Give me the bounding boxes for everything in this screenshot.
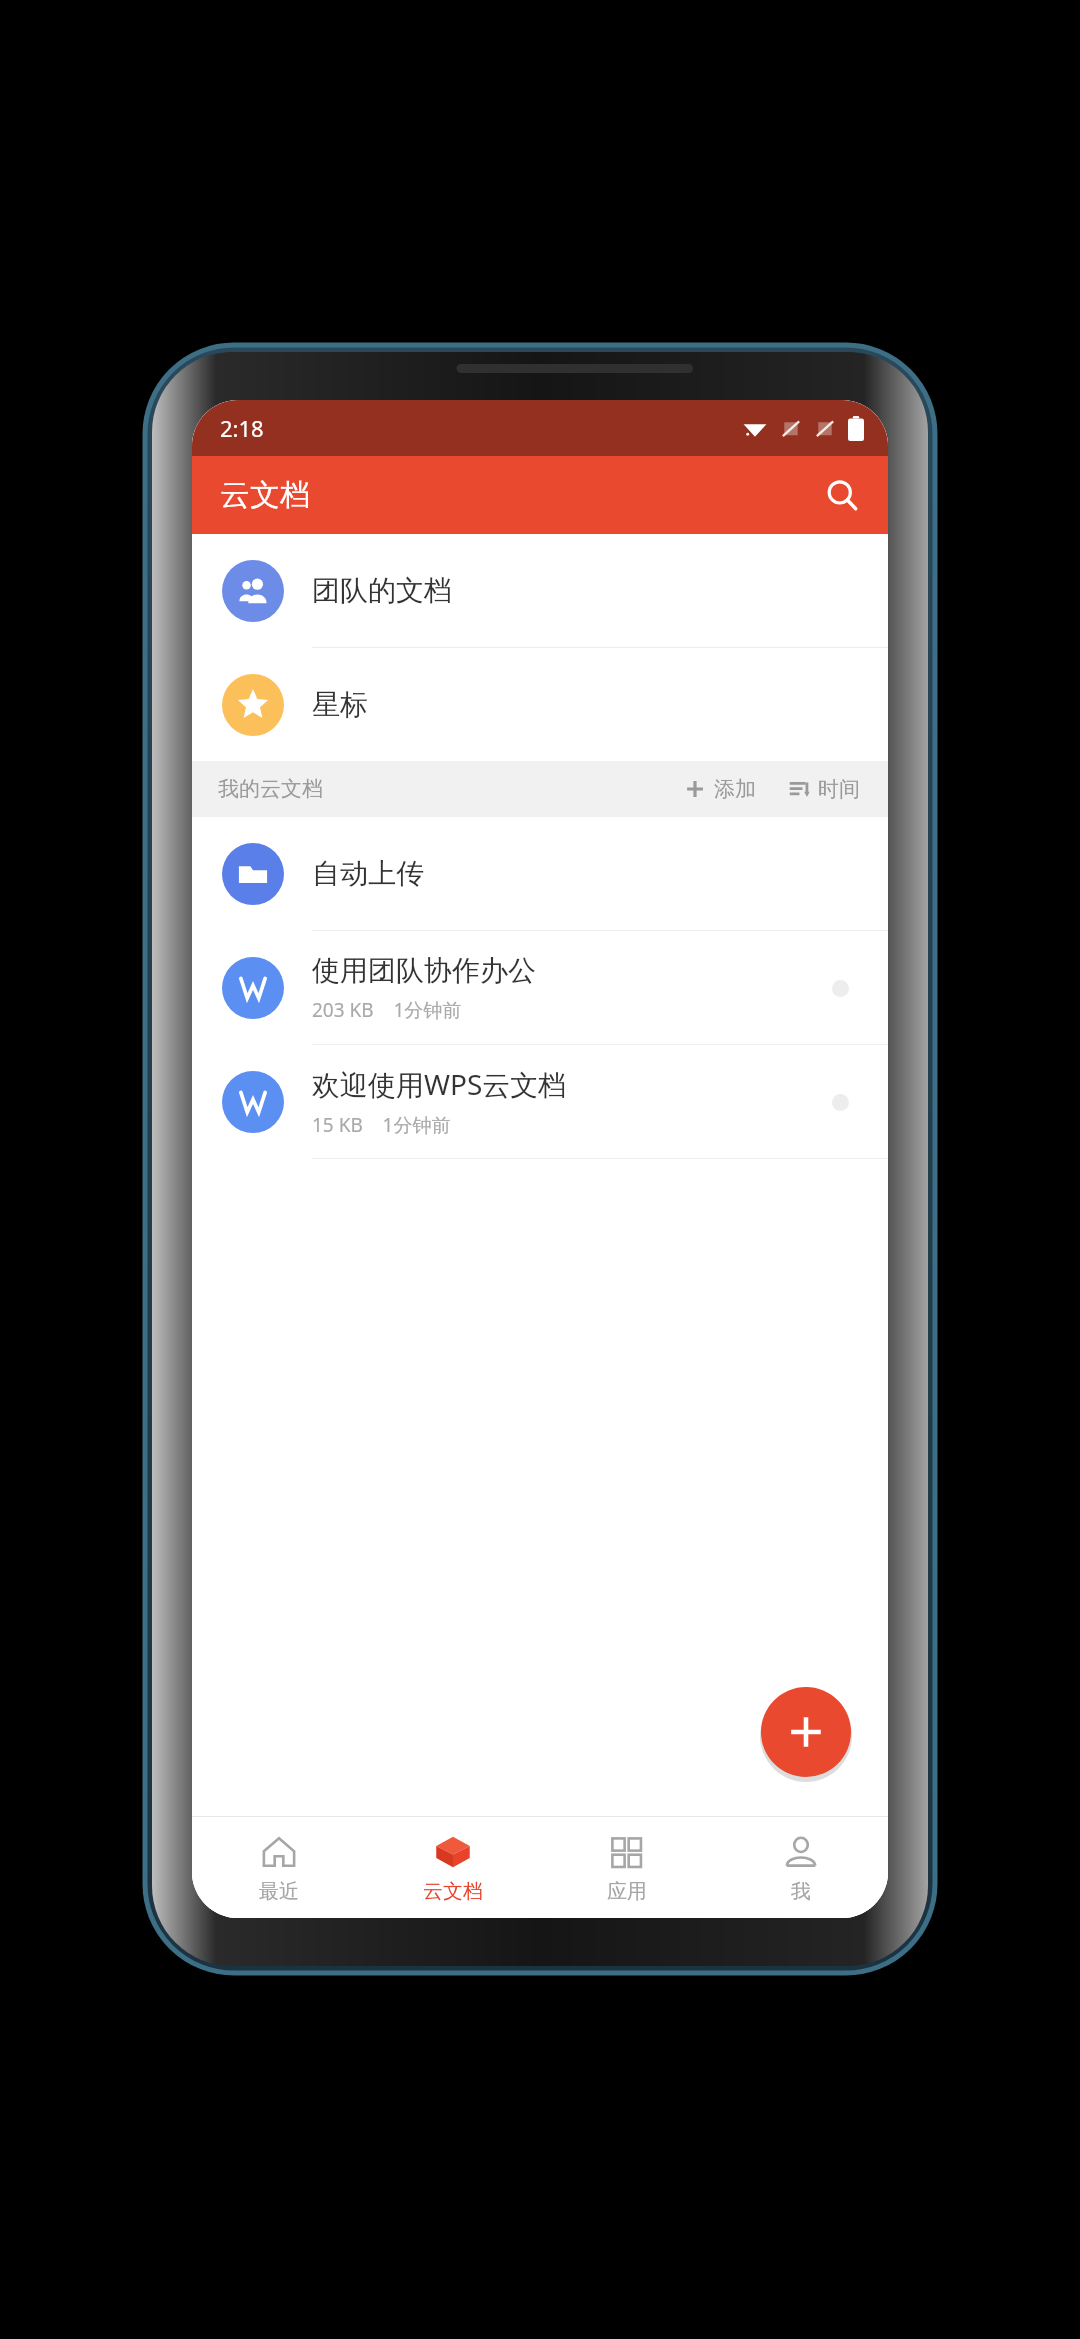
button[interactable]: 更多 <box>818 1080 862 1124</box>
staticText: 我的云文档 <box>218 776 323 802</box>
staticText: 15 KB 1分钟前 <box>312 1112 451 1138</box>
staticText: 云文档 <box>423 1879 483 1904</box>
button[interactable]: 我 <box>714 1817 888 1918</box>
button[interactable]: 更多 <box>818 966 862 1010</box>
staticText: 最近 <box>259 1879 299 1904</box>
staticText: 203 KB 1分钟前 <box>312 997 462 1023</box>
button[interactable]: 添加 <box>678 770 762 808</box>
button[interactable]: 搜索 <box>814 467 870 523</box>
staticText: 云文档 <box>220 476 310 514</box>
staticText: 欢迎使用WPS云文档 <box>312 1065 567 1103</box>
staticText: 星标 <box>312 687 368 722</box>
button[interactable]: 新建 <box>761 1687 851 1777</box>
button[interactable]: 最近 <box>192 1817 366 1918</box>
button[interactable]: 使用团队协作办公 <box>192 931 888 1044</box>
button[interactable]: 云文档 <box>366 1817 540 1918</box>
staticText: 添加 <box>714 776 756 802</box>
staticText: 时间 <box>818 776 860 802</box>
staticText: 团队的文档 <box>312 573 452 608</box>
button[interactable]: 自动上传 <box>192 817 888 930</box>
button[interactable]: 团队的文档 <box>192 534 888 647</box>
button[interactable]: 应用 <box>540 1817 714 1918</box>
staticText: 2:18 <box>220 413 264 443</box>
staticText: 使用团队协作办公 <box>312 953 536 988</box>
button[interactable]: 欢迎使用WPS云文档 <box>192 1045 888 1158</box>
button[interactable]: 时间 <box>782 770 866 808</box>
staticText: 应用 <box>607 1879 647 1904</box>
button[interactable]: 星标 <box>192 648 888 761</box>
staticText: 我 <box>791 1879 811 1904</box>
staticText: 自动上传 <box>312 856 424 891</box>
